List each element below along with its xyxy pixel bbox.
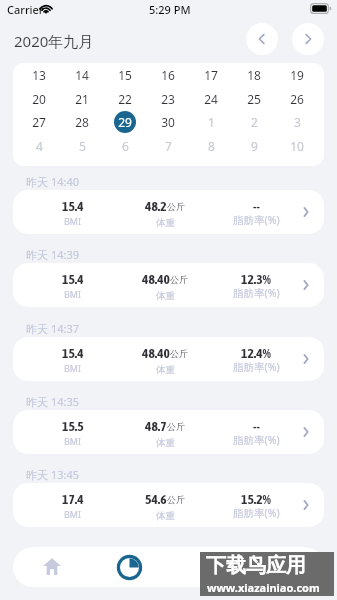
staticText: 3 <box>294 114 301 130</box>
staticText: 体重 <box>156 217 175 229</box>
button[interactable]: 17 <box>200 64 222 86</box>
button[interactable]: 29 <box>114 111 136 133</box>
button[interactable]: Open detail <box>292 198 320 226</box>
staticText: 昨天 <box>26 395 48 409</box>
staticText: 22 <box>118 91 132 107</box>
button[interactable]: Open detail <box>292 345 320 373</box>
button[interactable]: 28 <box>71 111 93 133</box>
staticText: BMI <box>64 435 82 447</box>
staticText: BMI <box>64 508 82 520</box>
button[interactable]: 9 <box>243 135 265 157</box>
staticText: BMI <box>64 288 82 300</box>
staticText: 昨天 <box>26 322 48 336</box>
button[interactable]: 18 <box>243 64 265 86</box>
staticText: 27 <box>32 114 46 130</box>
button[interactable]: 15.4 <box>13 263 324 307</box>
staticText: 昨天 <box>26 175 48 189</box>
button[interactable]: 15.4 <box>13 337 324 381</box>
staticText: 15.4 <box>62 198 84 214</box>
staticText: 29 <box>118 114 132 130</box>
button[interactable]: 15.4 <box>13 190 324 234</box>
staticText: 脂肪率(%) <box>233 506 280 520</box>
staticText: 54.6 <box>145 491 167 507</box>
button[interactable]: 15.5 <box>13 410 324 454</box>
staticText: 5 <box>79 138 86 154</box>
button[interactable]: 30 <box>157 111 179 133</box>
staticText: 17.4 <box>62 491 84 507</box>
staticText: 体重 <box>156 290 175 302</box>
staticText: 脂肪率(%) <box>233 433 280 447</box>
staticText: 48.2 <box>145 198 167 214</box>
staticText: 公斤 <box>170 274 188 285</box>
staticText: 48.40 <box>142 345 170 361</box>
staticText: -- <box>253 418 260 434</box>
button[interactable]: 8 <box>200 135 222 157</box>
staticText: 24 <box>204 91 218 107</box>
staticText: -- <box>253 198 260 214</box>
button[interactable]: Open detail <box>292 491 320 519</box>
staticText: 脂肪率(%) <box>233 286 280 300</box>
staticText: 19 <box>290 67 304 83</box>
staticText: 下载鸟应用 <box>206 553 306 578</box>
staticText: 15.4 <box>62 271 84 287</box>
staticText: 14:35 <box>51 394 80 409</box>
button[interactable]: 21 <box>71 88 93 110</box>
button[interactable]: Previous month <box>246 23 278 55</box>
staticText: 21 <box>75 91 89 107</box>
button[interactable]: Home <box>36 550 68 582</box>
button[interactable]: 27 <box>28 111 50 133</box>
button[interactable]: 16 <box>157 64 179 86</box>
button[interactable]: 17.4 <box>13 483 324 527</box>
button[interactable]: 2 <box>243 111 265 133</box>
staticText: 公斤 <box>170 348 188 359</box>
staticText: 公斤 <box>167 421 185 432</box>
button[interactable]: 23 <box>157 88 179 110</box>
staticText: 16 <box>161 67 175 83</box>
button[interactable]: 10 <box>286 135 308 157</box>
staticText: 13 <box>32 67 46 83</box>
button[interactable]: Open detail <box>292 271 320 299</box>
button[interactable]: 7 <box>157 135 179 157</box>
staticText: 15.4 <box>62 345 84 361</box>
staticText: 12.4% <box>241 345 272 361</box>
staticText: 公斤 <box>167 494 185 505</box>
button[interactable]: 25 <box>243 88 265 110</box>
button[interactable]: 15 <box>114 64 136 86</box>
staticText: BMI <box>64 362 82 374</box>
button[interactable]: 19 <box>286 64 308 86</box>
button[interactable]: 6 <box>114 135 136 157</box>
staticText: 12.3% <box>241 271 272 287</box>
staticText: 10 <box>290 138 304 154</box>
staticText: Carrier <box>7 2 44 17</box>
button[interactable]: 26 <box>286 88 308 110</box>
staticText: 公斤 <box>167 201 185 212</box>
button[interactable]: 14 <box>71 64 93 86</box>
staticText: 14:39 <box>51 247 80 262</box>
staticText: 7 <box>165 138 172 154</box>
button[interactable]: Statistics <box>113 551 145 583</box>
button[interactable]: 1 <box>200 111 222 133</box>
staticText: 5:29 PM <box>149 2 191 17</box>
staticText: 15.5 <box>62 418 84 434</box>
button[interactable]: 5 <box>71 135 93 157</box>
button[interactable]: Open detail <box>292 418 320 446</box>
button[interactable]: Next month <box>292 23 324 55</box>
button[interactable]: 20 <box>28 88 50 110</box>
staticText: 4 <box>36 138 43 154</box>
staticText: 2020年九月 <box>14 31 94 51</box>
staticText: 26 <box>290 91 304 107</box>
button[interactable]: 4 <box>28 135 50 157</box>
staticText: 脂肪率(%) <box>233 213 280 227</box>
button[interactable]: 13 <box>28 64 50 86</box>
staticText: 2 <box>251 114 258 130</box>
staticText: 48.40 <box>142 271 170 287</box>
staticText: 20 <box>32 91 46 107</box>
button[interactable]: 3 <box>286 111 308 133</box>
button[interactable]: 22 <box>114 88 136 110</box>
button[interactable]: 24 <box>200 88 222 110</box>
staticText: 18 <box>247 67 261 83</box>
staticText: 体重 <box>156 364 175 376</box>
staticText: 体重 <box>156 510 175 522</box>
staticText: 9 <box>251 138 258 154</box>
staticText: 14:37 <box>51 321 80 336</box>
